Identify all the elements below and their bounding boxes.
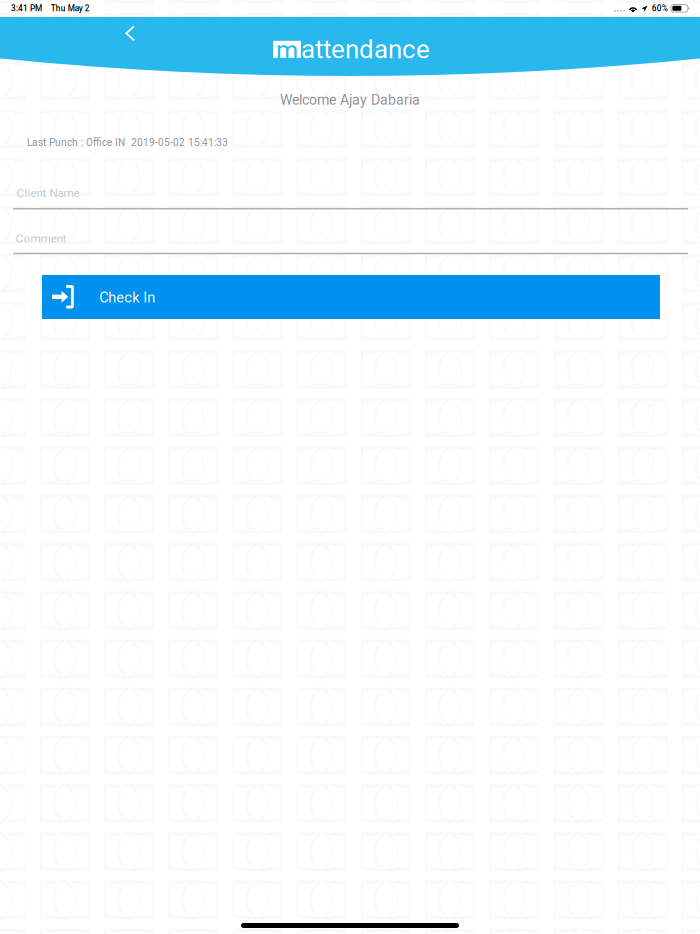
staticText: 60% [652,4,668,13]
staticText: Thu May 2 [51,4,90,13]
staticText: attendance [301,34,430,64]
staticText: Welcome Ajay Dabaria [280,92,420,108]
button[interactable]: Check In [42,275,660,319]
staticText: Last Punch : Office IN 2019-05-02 15:41:… [27,136,228,148]
button[interactable]: Back [108,11,152,55]
staticText: Comment [15,231,66,245]
staticText: Client Name [16,186,79,200]
staticText: m [276,36,298,66]
staticText: 3:41 PM [11,4,42,13]
staticText: Check In [99,289,155,306]
